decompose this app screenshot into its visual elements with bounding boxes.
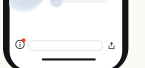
button[interactable]: Page settings xyxy=(13,37,27,51)
button[interactable]: Share xyxy=(105,39,117,51)
button[interactable]: Address xyxy=(28,41,103,51)
